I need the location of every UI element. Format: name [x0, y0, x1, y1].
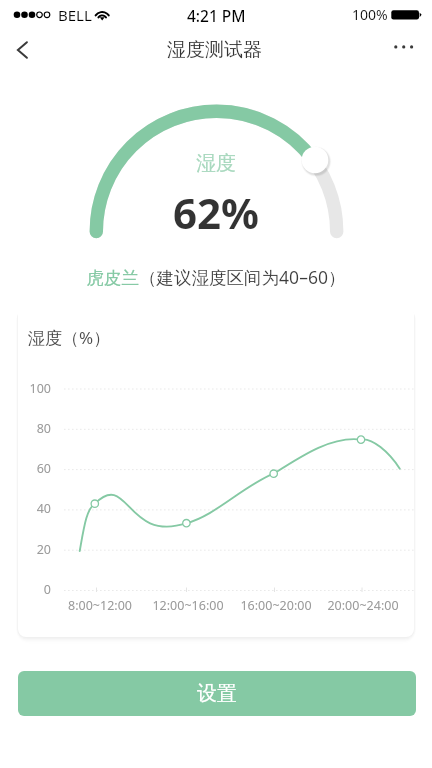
staticText: 80 [18, 420, 51, 437]
staticText: 湿度测试器 [167, 38, 262, 62]
staticText: 虎皮兰（建议湿度区间为40–60） [0, 265, 432, 289]
staticText: BELL [58, 5, 92, 25]
staticText: 100% [352, 5, 388, 24]
staticText: 12:00~16:00 [143, 597, 233, 614]
staticText: 100 [18, 380, 51, 397]
staticText: 60 [18, 460, 51, 477]
staticText: 湿度（%） [28, 326, 111, 349]
staticText: 20:00~24:00 [318, 597, 408, 614]
button[interactable]: More options [382, 28, 426, 72]
staticText: 8:00~12:00 [55, 597, 145, 614]
staticText: 62% [0, 184, 432, 241]
staticText: 0 [18, 581, 51, 598]
staticText: 40 [18, 500, 51, 517]
staticText: 16:00~20:00 [231, 597, 321, 614]
button[interactable]: Back [1, 28, 43, 70]
button[interactable]: 设置 [18, 671, 416, 716]
staticText: 20 [18, 541, 51, 558]
staticText: 4:21 PM [187, 5, 246, 26]
staticText: 湿度 [0, 151, 432, 176]
staticText: 设置 [197, 681, 237, 706]
